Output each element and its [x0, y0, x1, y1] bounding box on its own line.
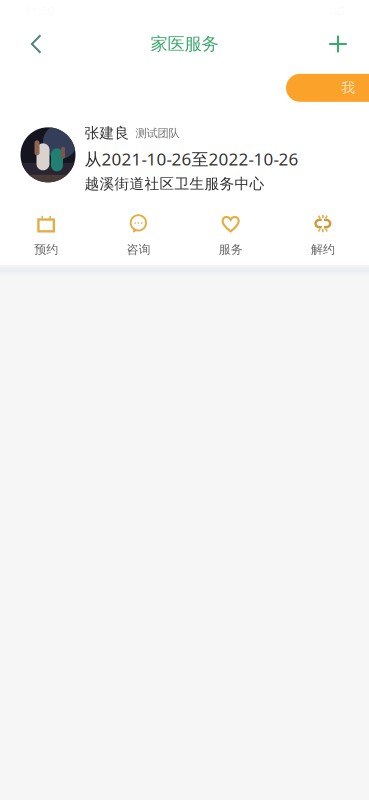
button[interactable]: Add [318, 22, 358, 66]
button[interactable]: 解约 [277, 214, 369, 257]
button[interactable]: 预约 [0, 214, 92, 257]
button[interactable]: 我 [286, 74, 369, 102]
button[interactable]: 咨询 [92, 214, 184, 257]
staticText: 预约 [34, 242, 58, 257]
staticText: 服务 [219, 242, 243, 257]
staticText: 从2021-10-26至2022-10-26 [84, 147, 298, 170]
staticText: 家医服务 [150, 33, 218, 55]
staticText: 越溪街道社区卫生服务中心 [84, 175, 264, 193]
staticText: 咨询 [126, 242, 150, 257]
staticText: 测试团队 [135, 126, 179, 140]
staticText: 张建良 [84, 124, 129, 142]
button[interactable]: Back [16, 22, 56, 66]
staticText: 解约 [311, 242, 335, 257]
button[interactable]: 服务 [184, 214, 277, 257]
staticText: 我 [341, 79, 355, 97]
